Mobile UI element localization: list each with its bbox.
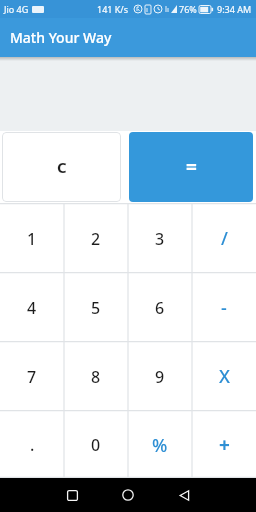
button[interactable]: 9: [128, 341, 192, 410]
staticText: 9:34 AM: [217, 3, 252, 15]
button[interactable]: X: [192, 341, 256, 410]
button[interactable]: 7: [0, 341, 64, 410]
staticText: =: [186, 154, 197, 180]
button[interactable]: 5: [64, 272, 128, 341]
staticText: Math Your Way: [10, 28, 112, 47]
staticText: 1: [27, 228, 37, 250]
staticText: 9: [155, 366, 165, 388]
button[interactable]: /: [192, 203, 256, 272]
button[interactable]: %: [128, 410, 192, 478]
staticText: 76%: [179, 3, 197, 15]
button[interactable]: C: [2, 132, 121, 202]
button[interactable]: [156, 478, 212, 512]
staticText: 3: [155, 228, 165, 250]
button[interactable]: =: [129, 132, 253, 202]
button[interactable]: 1: [0, 203, 64, 272]
staticText: 4: [27, 297, 37, 319]
staticText: +: [219, 432, 230, 458]
staticText: %: [152, 433, 168, 458]
button[interactable]: +: [192, 410, 256, 478]
staticText: -: [221, 295, 227, 320]
staticText: 0: [91, 434, 101, 456]
staticText: 8: [91, 366, 101, 388]
staticText: 6: [155, 297, 165, 319]
button[interactable]: 0: [64, 410, 128, 478]
staticText: 7: [27, 366, 37, 388]
button[interactable]: 4: [0, 272, 64, 341]
staticText: X: [219, 364, 230, 389]
button[interactable]: 3: [128, 203, 192, 272]
button[interactable]: -: [192, 272, 256, 341]
button[interactable]: .: [0, 410, 64, 478]
button[interactable]: [44, 478, 100, 512]
staticText: 141 K/s: [97, 3, 129, 15]
staticText: /: [221, 226, 228, 251]
staticText: C: [57, 157, 67, 177]
staticText: Jio 4G: [4, 3, 29, 15]
button[interactable]: 8: [64, 341, 128, 410]
staticText: 5: [91, 297, 101, 319]
staticText: 2: [91, 228, 101, 250]
button[interactable]: 6: [128, 272, 192, 341]
staticText: .: [30, 434, 35, 456]
button[interactable]: 2: [64, 203, 128, 272]
button[interactable]: [100, 478, 156, 512]
